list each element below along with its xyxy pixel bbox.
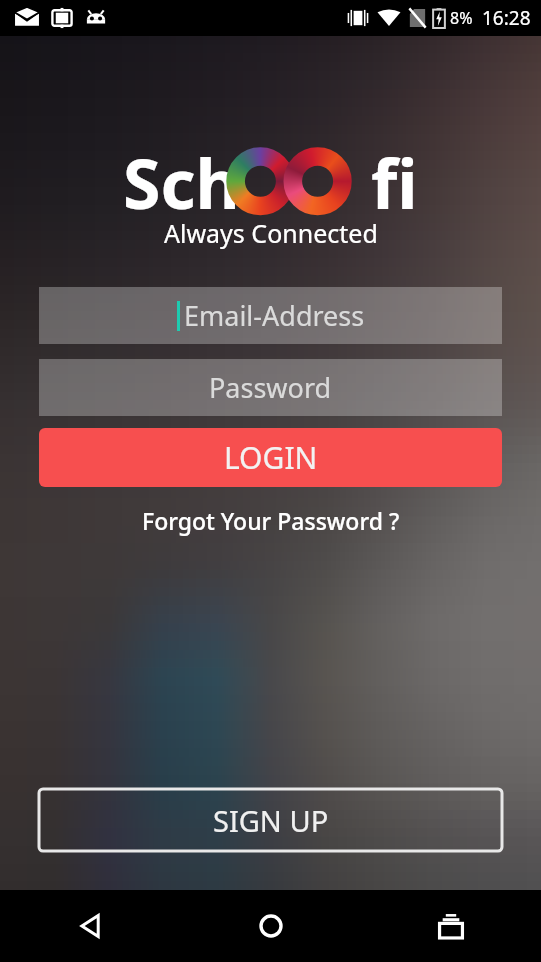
button[interactable]: LOGIN (39, 428, 502, 487)
button[interactable]: Forgot Your Password ? (138, 501, 404, 540)
staticText: fi (371, 136, 418, 216)
staticText: 16:28 (482, 5, 531, 31)
staticText: Sch (123, 136, 240, 216)
button[interactable]: Back (0, 890, 181, 962)
staticText: Email-Address (184, 297, 365, 334)
button[interactable]: Home (181, 890, 361, 962)
button[interactable]: Password (39, 359, 502, 416)
button[interactable]: SIGN UP (39, 789, 502, 851)
staticText: LOGIN (224, 437, 318, 478)
button[interactable]: Recents (361, 890, 541, 962)
button[interactable]: Email-Address (39, 287, 502, 344)
staticText: Password (209, 369, 332, 406)
staticText: SIGN UP (213, 801, 329, 840)
staticText: 8% (450, 7, 473, 29)
staticText: Always Connected (164, 216, 378, 250)
